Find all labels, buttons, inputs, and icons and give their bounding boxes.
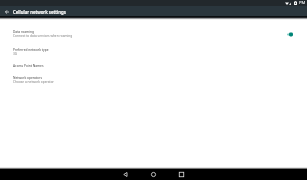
button[interactable]: Navigate up bbox=[2, 7, 12, 17]
button[interactable]: Home bbox=[148, 169, 159, 180]
staticText: 3G bbox=[13, 52, 18, 56]
staticText: Cellular network settings bbox=[13, 9, 66, 15]
staticText: Choose a network operator bbox=[13, 80, 54, 84]
staticText: Access Point Names bbox=[13, 64, 44, 68]
staticText: Network operators bbox=[13, 76, 42, 80]
button[interactable]: Data roaming bbox=[0, 25, 307, 43]
staticText: Preferred network type bbox=[13, 48, 49, 52]
button[interactable]: Network operators bbox=[0, 71, 307, 89]
button[interactable]: Access Point Names bbox=[0, 61, 307, 71]
staticText: Connect to data services when roaming bbox=[13, 34, 73, 38]
staticText: PM bbox=[299, 0, 306, 6]
button[interactable]: Recent apps bbox=[176, 169, 187, 180]
button[interactable]: Back bbox=[120, 169, 131, 180]
button[interactable]: Data roaming toggle bbox=[285, 30, 294, 39]
staticText: Data roaming bbox=[13, 30, 34, 34]
button[interactable]: Preferred network type bbox=[0, 43, 307, 61]
